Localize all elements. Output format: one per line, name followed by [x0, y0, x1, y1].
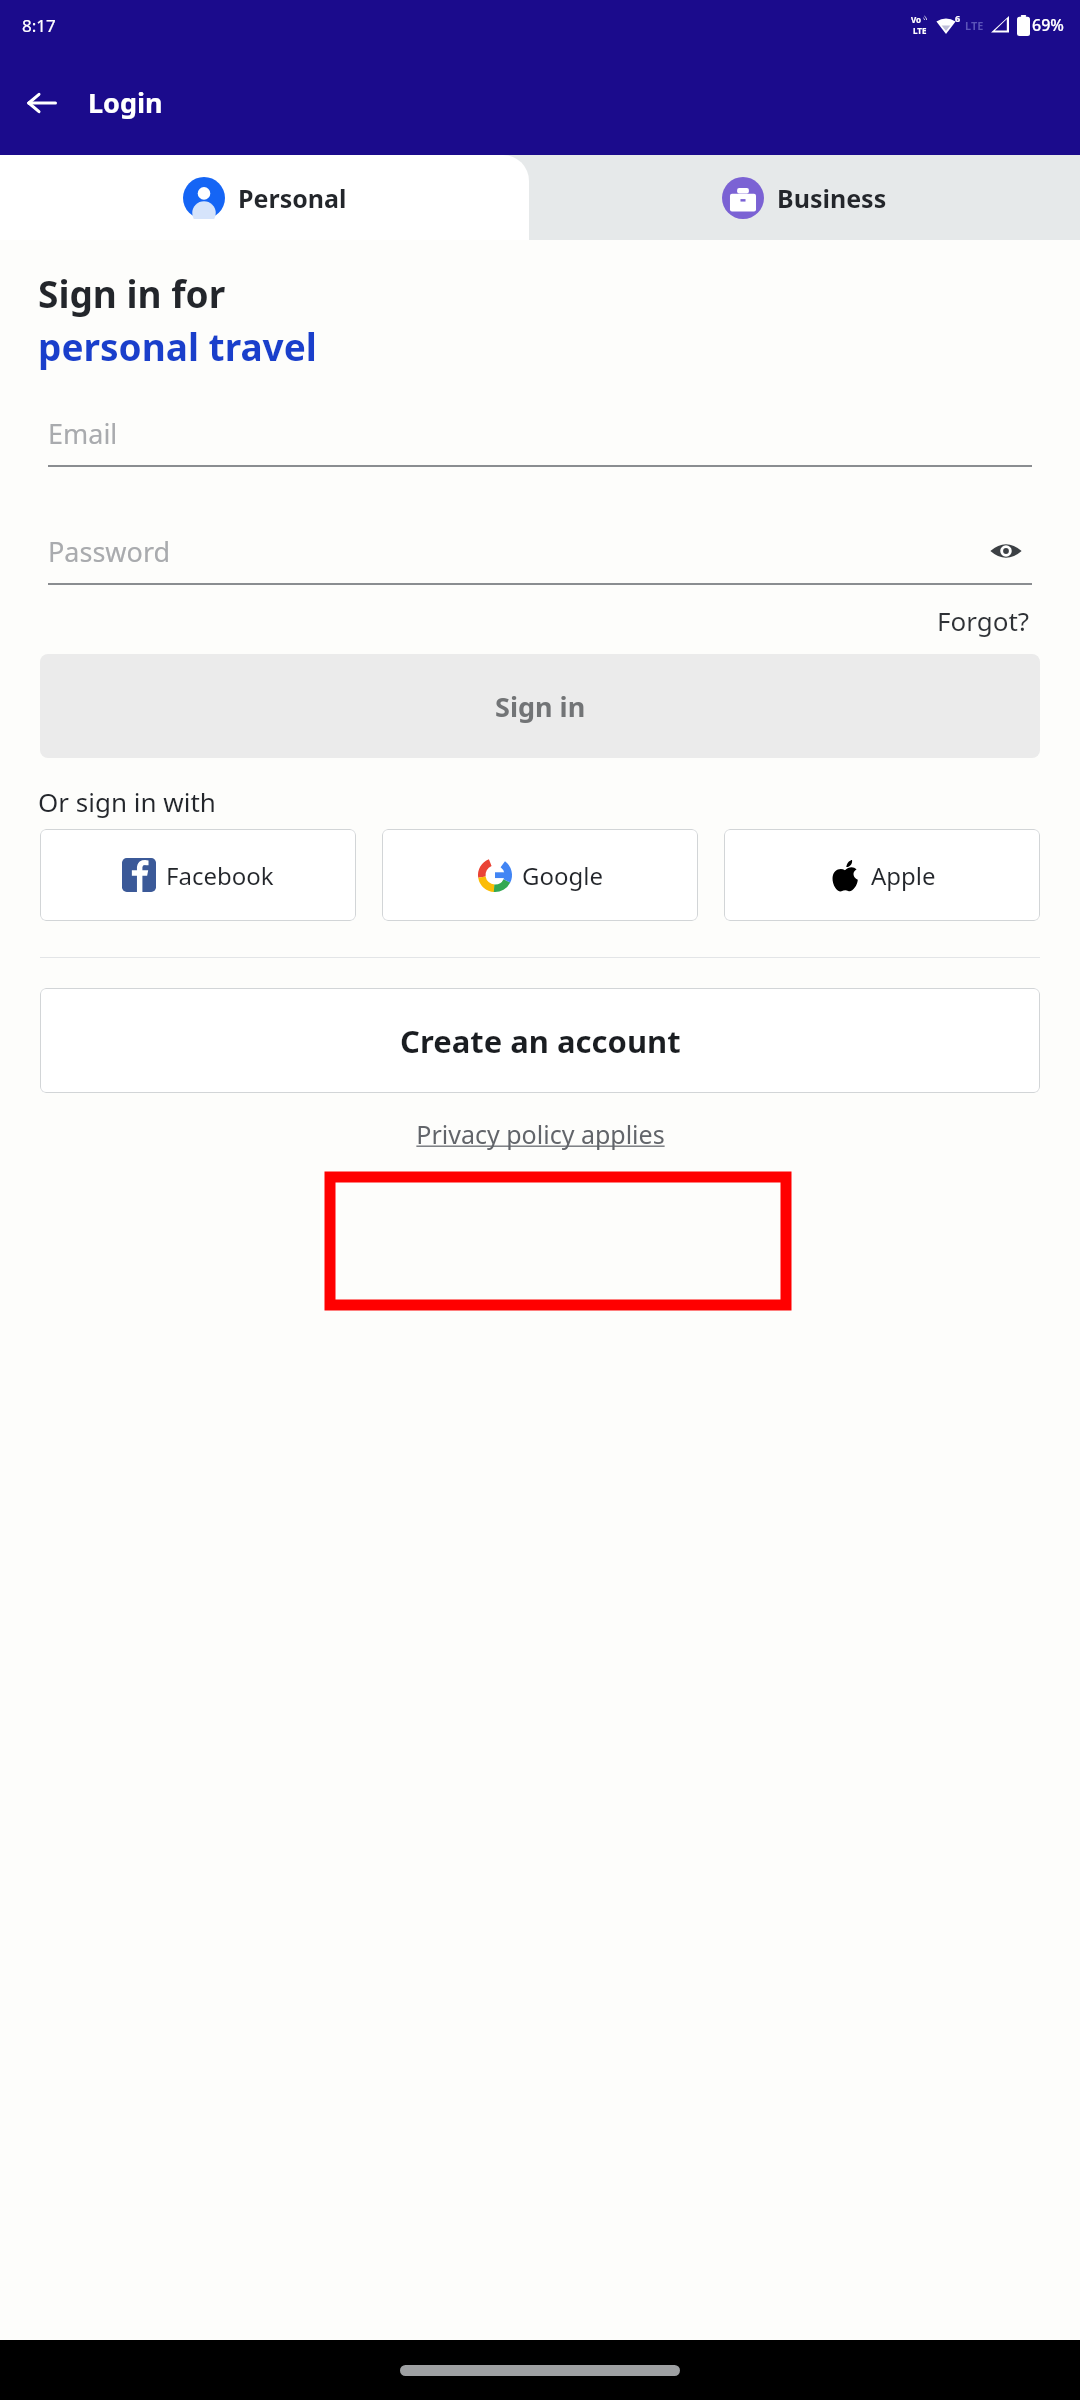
button[interactable]: Apple — [724, 829, 1040, 921]
staticText: 8:17 — [22, 14, 56, 37]
staticText: 6 — [955, 12, 961, 24]
staticText: Apple — [871, 859, 936, 892]
button[interactable]: Personal — [0, 155, 529, 240]
button[interactable]: Show password — [980, 525, 1032, 577]
button[interactable]: Google — [382, 829, 698, 921]
staticText: Forgot? — [937, 603, 1030, 638]
staticText: Personal — [238, 181, 347, 215]
button[interactable]: Privacy policy applies — [408, 1109, 673, 1159]
button[interactable]: Password — [48, 519, 1032, 583]
staticText: Business — [777, 181, 887, 215]
staticText: LTE — [965, 18, 984, 33]
button[interactable]: Back — [14, 75, 70, 131]
staticText: Or sign in with — [38, 784, 216, 819]
staticText: Google — [522, 859, 603, 892]
staticText: Password — [48, 533, 171, 570]
staticText: Privacy policy applies — [416, 1117, 665, 1151]
staticText: Login — [88, 84, 163, 121]
staticText: Sign in for — [38, 268, 226, 318]
staticText: 69% — [1032, 14, 1064, 36]
button[interactable]: Forgot? — [931, 597, 1036, 644]
button[interactable]: Facebook — [40, 829, 356, 921]
button[interactable]: Create an account — [40, 988, 1040, 1093]
staticText: Sign in — [495, 688, 586, 725]
staticText: Create an account — [400, 1020, 681, 1062]
staticText: Facebook — [166, 859, 274, 892]
button[interactable]: Business — [529, 155, 1080, 240]
staticText: Vo — [911, 14, 922, 25]
staticText: LTE — [913, 25, 927, 36]
staticText: Email — [48, 415, 118, 452]
button[interactable]: Email — [48, 401, 1032, 465]
button[interactable]: Sign in — [40, 654, 1040, 758]
staticText: personal travel — [38, 321, 317, 371]
